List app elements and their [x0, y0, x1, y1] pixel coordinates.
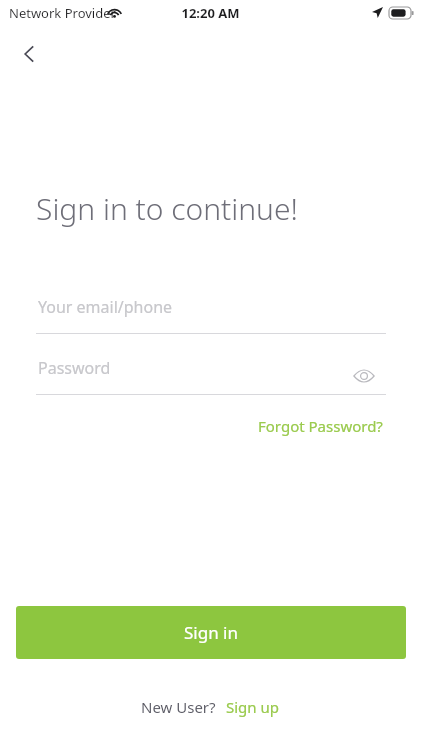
staticText: Sign up — [226, 697, 279, 717]
button[interactable]: Show password — [350, 362, 378, 390]
staticText: Sign in to continue! — [36, 188, 298, 229]
staticText: 12:20 AM — [181, 4, 240, 22]
staticText: Sign in — [184, 621, 238, 644]
button[interactable]: Forgot Password? — [250, 412, 391, 440]
button[interactable]: Back — [10, 34, 50, 74]
button[interactable]: Sign in — [16, 606, 406, 659]
staticText: Network Provider — [9, 4, 116, 22]
button[interactable]: Sign up — [224, 693, 281, 721]
staticText: Password — [38, 357, 111, 379]
staticText: New User? — [141, 697, 216, 717]
staticText: Forgot Password? — [258, 416, 383, 436]
staticText: Your email/phone — [38, 296, 173, 318]
